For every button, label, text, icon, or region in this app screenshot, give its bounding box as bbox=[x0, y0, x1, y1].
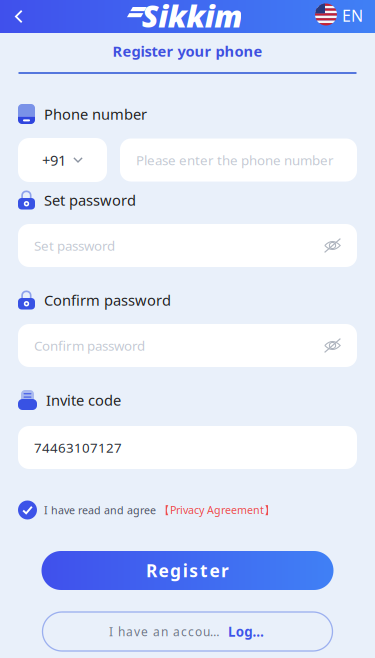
button[interactable]: Register bbox=[41, 551, 333, 590]
staticText: Sikkim bbox=[142, 0, 242, 36]
staticText: Set password bbox=[44, 190, 136, 210]
staticText: Please enter the phone number bbox=[136, 151, 334, 169]
staticText: I have an account bbox=[109, 623, 222, 639]
button[interactable]: Please enter the phone number bbox=[120, 138, 357, 181]
button[interactable]: Back bbox=[0, 0, 38, 33]
button[interactable]: Country code +91 bbox=[18, 138, 107, 182]
button[interactable]: Confirm password bbox=[18, 324, 357, 367]
staticText: Invite code bbox=[46, 390, 121, 410]
staticText: I have read and agree bbox=[44, 503, 156, 517]
staticText: Phone number bbox=[44, 104, 147, 124]
button[interactable]: Language: English bbox=[315, 0, 375, 33]
staticText: Register bbox=[146, 559, 229, 582]
button[interactable]: I have an account bbox=[42, 612, 332, 651]
staticText: 74463107127 bbox=[34, 439, 122, 456]
staticText: Confirm password bbox=[34, 337, 145, 354]
staticText: Register your phone bbox=[112, 41, 262, 61]
staticText: Login bbox=[228, 623, 266, 640]
button[interactable]: 74463107127 bbox=[18, 426, 357, 469]
button[interactable]: I have read and agree bbox=[18, 499, 357, 521]
staticText: EN bbox=[342, 5, 363, 26]
staticText: Confirm password bbox=[44, 290, 171, 310]
staticText: 【Privacy Agreement】 bbox=[159, 503, 275, 517]
button[interactable]: Set password bbox=[18, 224, 357, 267]
staticText: Set password bbox=[34, 237, 115, 254]
staticText: +91 bbox=[42, 150, 66, 170]
